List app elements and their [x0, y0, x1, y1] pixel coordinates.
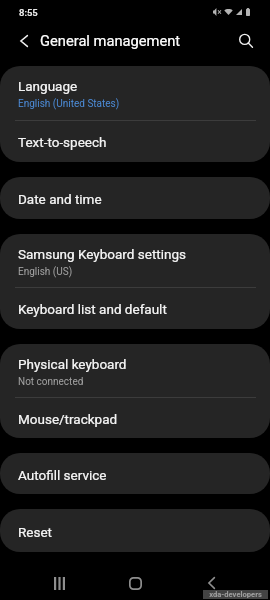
- staticText: Mouse/trackpad: [18, 411, 118, 427]
- staticText: General management: [40, 32, 181, 49]
- staticText: xda-developers: [209, 590, 262, 599]
- staticText: Keyboard list and default: [18, 301, 167, 317]
- staticText: Text-to-speech: [18, 134, 107, 150]
- button[interactable]: Navigate up: [13, 30, 35, 52]
- staticText: Autofill service: [18, 467, 107, 483]
- button[interactable]: Date and time: [0, 177, 270, 219]
- button[interactable]: Autofill service: [0, 453, 270, 494]
- button[interactable]: Physical keyboard: [0, 344, 270, 397]
- button[interactable]: Back: [193, 565, 229, 600]
- button[interactable]: Search: [234, 29, 258, 53]
- button[interactable]: Keyboard list and default: [0, 287, 270, 329]
- button[interactable]: Language: [0, 66, 270, 120]
- staticText: English (US): [18, 266, 73, 278]
- staticText: Physical keyboard: [18, 356, 127, 372]
- staticText: Date and time: [18, 191, 102, 207]
- staticText: Language: [18, 78, 78, 94]
- button[interactable]: Samsung Keyboard settings: [0, 234, 270, 287]
- button[interactable]: Reset: [0, 509, 270, 552]
- staticText: Not connected: [18, 376, 84, 388]
- staticText: Reset: [18, 524, 53, 540]
- staticText: Samsung Keyboard settings: [18, 246, 187, 262]
- button[interactable]: Mouse/trackpad: [0, 397, 270, 438]
- staticText: English (United States): [18, 98, 120, 110]
- button[interactable]: Text-to-speech: [0, 120, 270, 162]
- button[interactable]: Recent apps: [41, 565, 77, 600]
- button[interactable]: Home: [117, 565, 153, 600]
- staticText: 8:55: [19, 7, 38, 18]
